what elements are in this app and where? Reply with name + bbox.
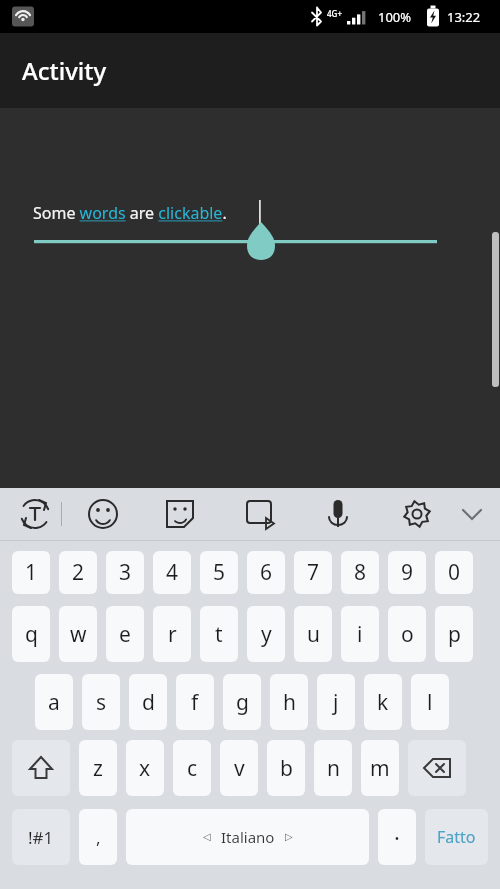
button[interactable]: v	[220, 740, 258, 796]
staticText: 4	[166, 558, 179, 587]
button[interactable]: q	[12, 606, 50, 662]
button[interactable]: l	[411, 674, 449, 730]
staticText: o	[401, 620, 414, 649]
button[interactable]: ·	[378, 809, 416, 865]
staticText: n	[327, 754, 340, 783]
staticText: ▷	[285, 831, 293, 843]
staticText: z	[93, 754, 103, 783]
staticText: v	[234, 754, 245, 783]
button[interactable]: 4	[153, 551, 191, 594]
button[interactable]: g	[223, 674, 261, 730]
button[interactable]: t	[200, 606, 238, 662]
button[interactable]: GIF	[238, 492, 282, 536]
button[interactable]: 7	[294, 551, 332, 594]
button[interactable]: 0	[435, 551, 473, 594]
staticText: 7	[307, 558, 320, 587]
button[interactable]: d	[129, 674, 167, 730]
staticText: e	[119, 620, 131, 649]
staticText: 9	[401, 558, 414, 587]
staticText: y	[261, 620, 272, 649]
staticText: j	[333, 688, 339, 717]
staticText: i	[357, 620, 363, 649]
staticText: 8	[354, 558, 367, 587]
button[interactable]: h	[270, 674, 308, 730]
button[interactable]: !#1	[12, 809, 70, 865]
button[interactable]: 1	[12, 551, 50, 594]
button[interactable]: Voice input	[316, 492, 360, 536]
staticText: c	[187, 754, 198, 783]
staticText: g	[236, 688, 249, 717]
button[interactable]: u	[294, 606, 332, 662]
button[interactable]: y	[247, 606, 285, 662]
staticText: a	[48, 688, 60, 717]
button[interactable]: 5	[200, 551, 238, 594]
button[interactable]: n	[314, 740, 352, 796]
button[interactable]: Emoji	[81, 492, 125, 536]
button[interactable]: Fatto	[425, 809, 488, 865]
button[interactable]: ◁	[126, 809, 369, 865]
staticText: 100%	[378, 8, 412, 26]
staticText: x	[139, 754, 151, 783]
button[interactable]: 6	[247, 551, 285, 594]
staticText: k	[377, 688, 389, 717]
button[interactable]: ,	[79, 809, 117, 865]
button[interactable]: i	[341, 606, 379, 662]
staticText: 1	[25, 558, 38, 587]
staticText: ·	[394, 822, 400, 852]
button[interactable]: a	[35, 674, 73, 730]
button[interactable]: x	[126, 740, 164, 796]
button[interactable]: 9	[388, 551, 426, 594]
staticText: Some words are clickable.	[33, 202, 227, 224]
button[interactable]: Stickers	[158, 492, 202, 536]
staticText: 13:22	[447, 8, 481, 26]
staticText: Fatto	[437, 826, 476, 848]
button[interactable]: k	[364, 674, 402, 730]
button[interactable]: z	[79, 740, 117, 796]
button[interactable]: r	[153, 606, 191, 662]
button[interactable]: 8	[341, 551, 379, 594]
staticText: r	[168, 620, 177, 649]
button[interactable]: j	[317, 674, 355, 730]
button[interactable]: Text mode	[13, 492, 57, 536]
staticText: 4G+	[327, 8, 342, 19]
staticText: 6	[260, 558, 273, 587]
button[interactable]: Shift	[12, 740, 70, 796]
staticText: 5	[213, 558, 226, 587]
button[interactable]: Keyboard settings	[395, 492, 439, 536]
staticText: !#1	[28, 826, 54, 849]
staticText: Italiano	[221, 827, 275, 847]
staticText: 3	[119, 558, 132, 587]
staticText: p	[448, 620, 461, 649]
button[interactable]: Hide keyboard toolbar	[450, 492, 494, 536]
button[interactable]: 3	[106, 551, 144, 594]
staticText: 0	[448, 558, 461, 587]
staticText: b	[280, 754, 293, 783]
staticText: ◁	[203, 831, 211, 843]
staticText: l	[427, 688, 433, 717]
staticText: f	[191, 688, 199, 717]
staticText: 2	[72, 558, 85, 587]
button[interactable]: Some words are clickable.	[33, 202, 227, 224]
button[interactable]: c	[173, 740, 211, 796]
button[interactable]: 2	[59, 551, 97, 594]
staticText: u	[307, 620, 320, 649]
button[interactable]: o	[388, 606, 426, 662]
staticText: m	[370, 754, 390, 783]
staticText: t	[215, 620, 223, 649]
button[interactable]: Backspace	[408, 740, 466, 796]
button[interactable]: m	[361, 740, 399, 796]
staticText: Activity	[22, 54, 107, 87]
button[interactable]: e	[106, 606, 144, 662]
button[interactable]: s	[82, 674, 120, 730]
staticText: s	[96, 688, 107, 717]
button[interactable]: w	[59, 606, 97, 662]
button[interactable]: b	[267, 740, 305, 796]
button[interactable]: f	[176, 674, 214, 730]
staticText: d	[142, 688, 155, 717]
staticText: q	[25, 620, 38, 649]
staticText: ,	[96, 826, 101, 849]
staticText: h	[283, 688, 296, 717]
staticText: w	[70, 620, 87, 649]
button[interactable]: p	[435, 606, 473, 662]
